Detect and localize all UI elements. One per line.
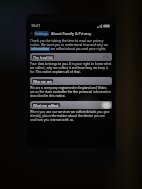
staticText: We are a company registered in England a… (30, 86, 112, 90)
staticText: Thank you for taking the time to read ou… (30, 39, 112, 47)
button[interactable]: The legal bit (30, 53, 112, 61)
staticText: described in this notice. (30, 94, 66, 98)
button[interactable]: What we collect (30, 101, 112, 109)
staticText: 10:41 (31, 23, 41, 28)
staticText: Who we are (33, 79, 52, 83)
button[interactable]: information (30, 47, 50, 51)
staticText: we collect, why we collect it and how lo… (30, 66, 109, 70)
staticText: and how you interact with us. (30, 118, 74, 122)
staticText: directly, plus information about the dev… (30, 114, 112, 118)
staticText: for. This notice explains all of that. (30, 70, 81, 74)
staticText: we collect about you and your rights. (50, 47, 107, 51)
button[interactable]: Who we are (30, 77, 112, 85)
staticText: When you use our services we collect det… (30, 110, 112, 114)
staticText: act as the data controller for the perso… (30, 90, 111, 94)
staticText: Your data belongs to you. It is your rig… (30, 62, 112, 66)
button[interactable]: Back (27, 30, 51, 37)
staticText: Settings (35, 31, 48, 36)
staticText: What we collect (33, 103, 59, 107)
staticText: information (31, 47, 49, 51)
staticText: v1.4 (103, 55, 109, 59)
staticText: About Family & Privacy (51, 31, 92, 36)
staticText: The legal bit (33, 55, 53, 59)
